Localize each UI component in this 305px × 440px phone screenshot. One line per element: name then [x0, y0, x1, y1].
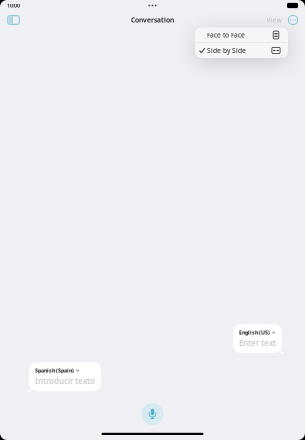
staticText: View — [266, 16, 281, 24]
staticText: Spanish (Spain) — [35, 367, 74, 374]
staticText: 10:00 — [7, 2, 20, 9]
button[interactable]: Side by Side — [195, 43, 288, 58]
button[interactable]: Show Sidebar — [0, 11, 27, 29]
staticText: Introducir texto — [35, 376, 95, 386]
staticText: English (US) — [239, 329, 270, 336]
button[interactable]: Face to Face — [195, 27, 288, 42]
button[interactable]: More Options — [285, 11, 305, 29]
staticText: Face to Face — [207, 31, 245, 39]
button[interactable]: English (US) — [233, 324, 282, 353]
button[interactable]: Spanish (Spain) — [29, 362, 101, 391]
button[interactable]: View — [263, 11, 285, 29]
staticText: Conversation — [131, 16, 174, 24]
staticText: Side by Side — [207, 46, 246, 55]
button[interactable]: Start Recording — [140, 402, 164, 426]
staticText: Enter text — [239, 338, 276, 348]
